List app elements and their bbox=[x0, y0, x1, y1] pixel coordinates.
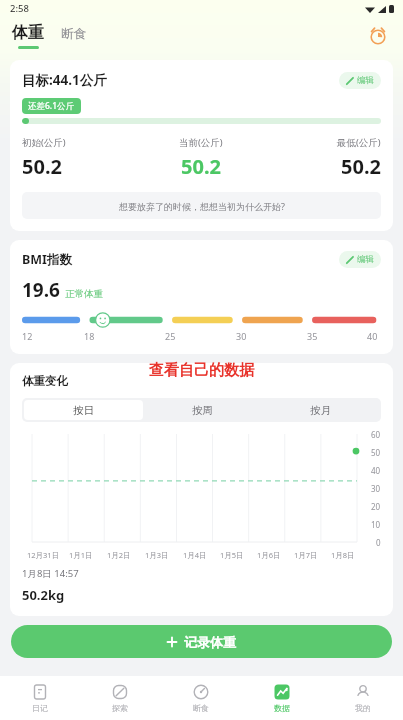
staticText: 断食 bbox=[61, 26, 86, 42]
button[interactable]: 断食 bbox=[61, 26, 86, 47]
staticText: 25 bbox=[165, 330, 176, 342]
staticText: 1月8日 14:57 bbox=[22, 567, 79, 580]
staticText: 探索 bbox=[112, 703, 128, 713]
button[interactable]: 编辑 bbox=[339, 251, 381, 268]
staticText: 初始(公斤) bbox=[22, 136, 66, 149]
staticText: 按日 bbox=[73, 404, 94, 417]
staticText: 50.2 bbox=[22, 153, 62, 180]
button[interactable]: 按月 bbox=[261, 400, 379, 420]
button[interactable]: 探索 bbox=[80, 676, 160, 720]
staticText: 查看自己的数据 bbox=[149, 361, 254, 380]
staticText: 12 bbox=[22, 330, 33, 342]
staticText: 按周 bbox=[192, 404, 213, 417]
staticText: 1月1日 bbox=[69, 550, 93, 560]
staticText: 日记 bbox=[32, 703, 48, 713]
staticText: BMI指数 bbox=[22, 251, 72, 268]
staticText: 18 bbox=[84, 330, 95, 342]
staticText: 体重变化 bbox=[22, 374, 68, 388]
staticText: 0 bbox=[376, 537, 381, 548]
staticText: 记录体重 bbox=[184, 634, 236, 650]
staticText: 体重 bbox=[12, 23, 44, 43]
staticText: 正常体重 bbox=[65, 288, 103, 300]
staticText: 想要放弃了的时候，想想当初为什么开始? bbox=[119, 200, 285, 212]
staticText: 1月2日 bbox=[107, 550, 131, 560]
staticText: 目标:44.1公斤 bbox=[22, 71, 107, 89]
staticText: 20 bbox=[371, 501, 381, 512]
staticText: 40 bbox=[371, 465, 381, 476]
staticText: 35 bbox=[307, 330, 318, 342]
staticText: 我的 bbox=[355, 703, 371, 713]
staticText: 60 bbox=[371, 429, 381, 440]
staticText: 40 bbox=[367, 330, 378, 342]
button[interactable]: 日记 bbox=[0, 676, 80, 720]
staticText: 当前(公斤) bbox=[179, 136, 223, 149]
staticText: 编辑 bbox=[357, 75, 374, 86]
staticText: 30 bbox=[371, 483, 381, 494]
button[interactable]: 按日 bbox=[24, 400, 143, 420]
button[interactable]: 体重 bbox=[12, 23, 44, 49]
staticText: 最低(公斤) bbox=[337, 136, 381, 149]
staticText: 10 bbox=[371, 519, 381, 530]
staticText: 编辑 bbox=[357, 254, 374, 265]
staticText: 1月7日 bbox=[294, 550, 318, 560]
staticText: 1月3日 bbox=[145, 550, 169, 560]
button[interactable]: Fasting reminder alarm bbox=[364, 22, 392, 50]
staticText: 50 bbox=[371, 447, 381, 458]
staticText: 数据 bbox=[274, 703, 290, 713]
button[interactable]: 记录体重 bbox=[11, 625, 392, 658]
button[interactable]: 断食 bbox=[160, 676, 241, 720]
staticText: 1月4日 bbox=[183, 550, 207, 560]
staticText: 1月6日 bbox=[257, 550, 281, 560]
staticText: 2:58 bbox=[10, 2, 29, 15]
button[interactable]: 想要放弃了的时候，想想当初为什么开始? bbox=[22, 192, 381, 219]
staticText: 12月31日 bbox=[27, 550, 60, 560]
staticText: 19.6 bbox=[22, 277, 60, 303]
staticText: 按月 bbox=[310, 404, 331, 417]
staticText: 断食 bbox=[193, 703, 209, 713]
staticText: 1月5日 bbox=[220, 550, 244, 560]
button[interactable]: 数据 bbox=[241, 676, 322, 720]
staticText: 50.2kg bbox=[22, 586, 65, 604]
staticText: 50.2 bbox=[341, 153, 381, 180]
staticText: 30 bbox=[236, 330, 247, 342]
staticText: 1月8日 bbox=[331, 550, 355, 560]
button[interactable]: 编辑 bbox=[339, 72, 381, 89]
staticText: 还差6.1公斤 bbox=[28, 100, 75, 112]
staticText: 50.2 bbox=[181, 153, 221, 180]
button[interactable]: 我的 bbox=[322, 676, 403, 720]
button[interactable]: 按周 bbox=[143, 400, 261, 420]
